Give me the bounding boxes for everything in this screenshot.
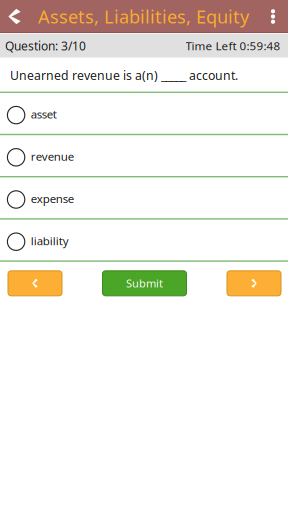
staticText: Assets, Liabilities, Equity	[38, 4, 249, 29]
button[interactable]: revenue	[0, 135, 288, 177]
staticText: asset	[31, 106, 57, 122]
button[interactable]: asset	[0, 93, 288, 135]
button[interactable]: More options	[258, 0, 288, 33]
button[interactable]: Next question	[227, 271, 281, 296]
staticText: Time Left 0:59:48	[185, 38, 280, 54]
staticText: Unearned revenue is a(n) _____ account.	[10, 67, 238, 84]
button[interactable]: expense	[0, 177, 288, 220]
button[interactable]: Submit	[102, 271, 186, 296]
button[interactable]: Back	[0, 0, 29, 33]
staticText: Question: 3/10	[5, 38, 86, 54]
staticText: Submit	[126, 276, 163, 291]
staticText: revenue	[31, 148, 74, 164]
staticText: expense	[31, 191, 74, 206]
staticText: liability	[31, 233, 69, 248]
button[interactable]: Previous question	[8, 271, 62, 296]
button[interactable]: liability	[0, 220, 288, 262]
